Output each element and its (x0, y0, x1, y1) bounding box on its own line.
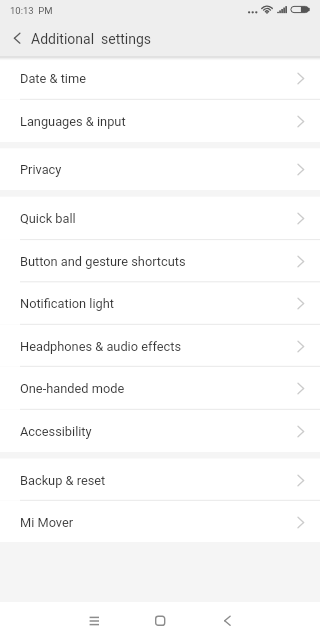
staticText: Mi Mover (20, 515, 74, 530)
staticText: Privacy (20, 162, 62, 177)
button[interactable]: One-handed mode (0, 367, 320, 410)
button[interactable]: Recent apps (74, 602, 114, 640)
staticText: Languages & input (20, 114, 126, 129)
button[interactable]: Mi Mover (0, 501, 320, 543)
button[interactable]: Privacy (0, 148, 320, 190)
button[interactable]: Date & time (0, 56, 320, 100)
staticText: 10:13 PM (10, 5, 53, 16)
button[interactable]: Backup & reset (0, 459, 320, 501)
staticText: Notification light (20, 296, 114, 311)
staticText: Additional settings (31, 31, 152, 47)
staticText: Backup & reset (20, 473, 106, 488)
staticText: Accessibility (20, 424, 92, 439)
staticText: Headphones & audio effects (20, 339, 182, 354)
staticText: Button and gesture shortcuts (20, 254, 186, 269)
button[interactable]: Home (140, 602, 180, 640)
staticText: Quick ball (20, 211, 76, 226)
button[interactable]: Headphones & audio effects (0, 325, 320, 367)
button[interactable]: Navigate up (0, 22, 32, 56)
button[interactable]: Back (207, 602, 247, 640)
button[interactable]: Accessibility (0, 410, 320, 453)
button[interactable]: Notification light (0, 282, 320, 325)
button[interactable]: Quick ball (0, 197, 320, 240)
staticText: One-handed mode (20, 381, 125, 396)
staticText: Date & time (20, 71, 86, 86)
button[interactable]: Button and gesture shortcuts (0, 240, 320, 282)
button[interactable]: Languages & input (0, 100, 320, 143)
